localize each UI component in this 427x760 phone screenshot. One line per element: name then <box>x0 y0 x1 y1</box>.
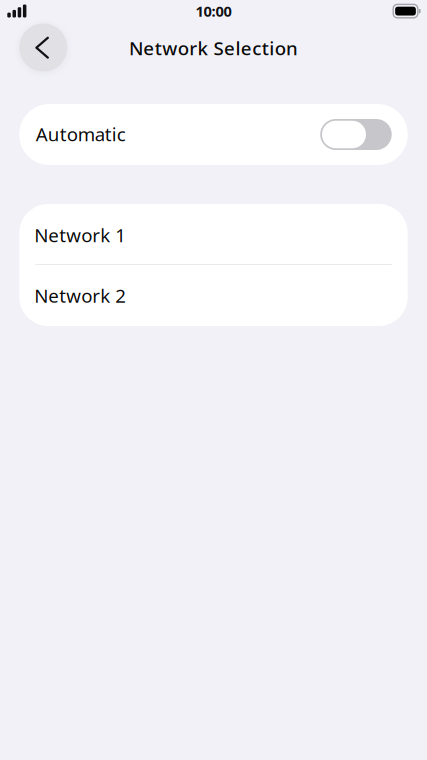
staticText: Network 1 <box>34 223 126 247</box>
button[interactable]: Back <box>19 23 67 71</box>
staticText: Network Selection <box>129 36 298 60</box>
button[interactable]: Network 2 <box>19 265 408 326</box>
staticText: Network 2 <box>34 283 126 308</box>
button[interactable]: Automatic <box>19 104 408 165</box>
button[interactable]: Network 1 <box>19 204 408 264</box>
staticText: Automatic <box>36 122 126 146</box>
staticText: 10:00 <box>195 1 231 21</box>
